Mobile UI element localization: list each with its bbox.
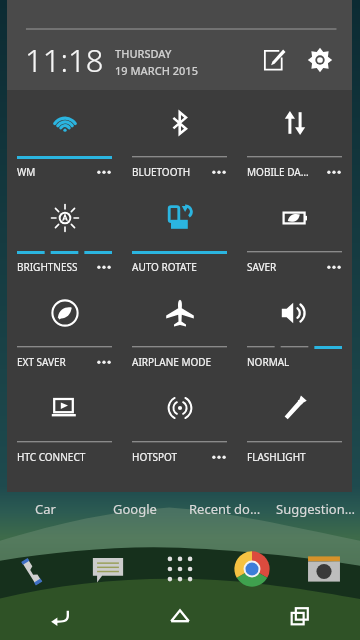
button[interactable]: Suggestion… [270, 495, 360, 523]
button[interactable]: Apps [144, 543, 216, 595]
staticText: BLUETOOTH [132, 165, 191, 179]
button[interactable]: Chrome [216, 543, 288, 595]
staticText: AIRPLANE MODE [132, 355, 212, 369]
staticText: Suggestion… [276, 500, 355, 518]
button[interactable]: HTC CONNECT [7, 375, 122, 470]
button[interactable]: Home [120, 592, 240, 640]
button[interactable]: Phone [0, 543, 72, 595]
staticText: HTC CONNECT [17, 450, 86, 464]
button[interactable]: HOTSPOT [122, 375, 237, 470]
button[interactable]: AIRPLANE MODE [122, 280, 237, 375]
button[interactable]: WM [7, 90, 122, 185]
staticText: WM [17, 165, 36, 179]
button[interactable]: Back [0, 592, 120, 640]
button[interactable]: Messages [72, 543, 144, 595]
button[interactable]: SAVER [237, 185, 352, 280]
staticText: NORMAL [247, 355, 290, 369]
button[interactable]: Settings [300, 40, 340, 80]
staticText: Google [113, 500, 157, 518]
button[interactable]: Edit [254, 40, 294, 80]
button[interactable]: Recents [240, 592, 360, 640]
staticText: 11:18 [25, 39, 104, 81]
button[interactable]: Car [0, 495, 90, 523]
button[interactable]: AUTO ROTATE [122, 185, 237, 280]
button[interactable]: Camera [288, 543, 360, 595]
staticText: HOTSPOT [132, 450, 178, 464]
staticText: AUTO ROTATE [132, 260, 197, 274]
button[interactable]: NORMAL [237, 280, 352, 375]
button[interactable]: BLUETOOTH [122, 90, 237, 185]
staticText: Car [35, 500, 56, 518]
button[interactable]: Google [90, 495, 180, 523]
button[interactable]: MOBILE DA… [237, 90, 352, 185]
button[interactable]: BRIGHTNESS [7, 185, 122, 280]
staticText: SAVER [247, 260, 277, 274]
staticText: BRIGHTNESS [17, 260, 78, 274]
staticText: Recent do… [189, 500, 261, 518]
staticText: THURSDAY [115, 46, 172, 61]
staticText: MOBILE DA… [247, 165, 309, 179]
button[interactable]: Recent do… [180, 495, 270, 523]
staticText: EXT SAVER [17, 355, 66, 369]
staticText: FLASHLIGHT [247, 450, 306, 464]
staticText: 19 MARCH 2015 [115, 63, 198, 78]
button[interactable]: EXT SAVER [7, 280, 122, 375]
button[interactable]: FLASHLIGHT [237, 375, 352, 470]
